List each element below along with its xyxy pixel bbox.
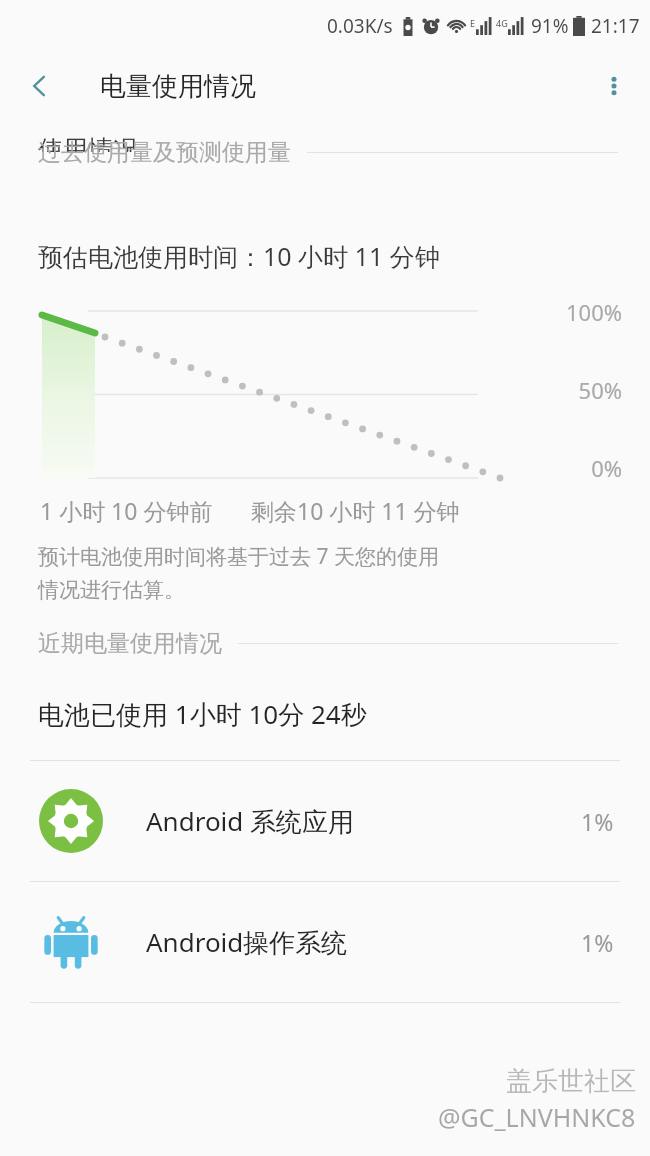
button[interactable]: More options — [586, 58, 642, 114]
staticText: 4G — [496, 17, 508, 29]
staticText: 电池已使用 1小时 10分 24秒 — [38, 696, 367, 732]
staticText: 0.03K/s — [327, 13, 393, 39]
staticText: 1% — [581, 806, 614, 837]
staticText: 91% — [531, 13, 569, 39]
staticText: E — [470, 17, 476, 29]
staticText: @GC_LNVHNKC8 — [438, 1100, 636, 1134]
staticText: 使用情况 — [38, 134, 138, 152]
staticText: 近期电量使用情况 — [38, 629, 222, 658]
staticText: 电量使用情况 — [100, 70, 256, 103]
button[interactable]: Android 系统应用 — [0, 761, 650, 881]
staticText: 预估电池使用时间：10 小时 11 分钟 — [38, 239, 440, 273]
staticText: Android操作系统 — [146, 924, 581, 960]
staticText: 0% — [591, 453, 622, 483]
staticText: Android 系统应用 — [146, 803, 581, 839]
staticText: 1% — [581, 927, 614, 958]
staticText: 剩余10 小时 11 分钟 — [251, 495, 460, 526]
staticText: 过去使用量及预测使用量 — [38, 138, 291, 167]
staticText: 100% — [565, 297, 622, 327]
button[interactable]: Back — [12, 58, 68, 114]
button[interactable]: Android操作系统 — [0, 882, 650, 1002]
staticText: 1 小时 10 分钟前 — [40, 495, 213, 526]
staticText: 盖乐世社区 — [506, 1065, 636, 1098]
staticText: 50% — [578, 375, 622, 405]
staticText: 21:17 — [591, 13, 640, 39]
staticText: 预计电池使用时间将基于过去 7 天您的使用 情况进行估算。 — [38, 542, 439, 603]
